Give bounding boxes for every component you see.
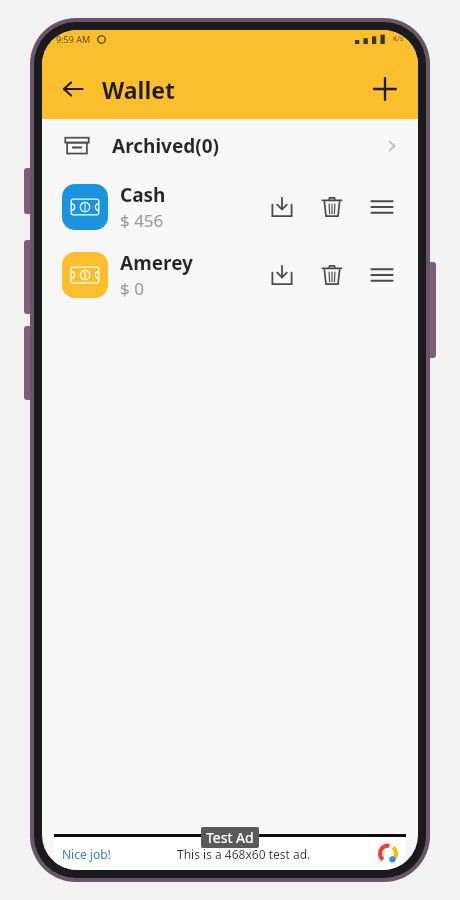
staticText: Archived(0) (112, 133, 220, 159)
button[interactable]: Reorder (362, 255, 402, 295)
button[interactable]: Back (50, 66, 96, 112)
staticText: 9:59 AM (56, 33, 91, 45)
staticText: Nice job! (62, 846, 111, 862)
staticText: This is a 468x60 test ad. (177, 846, 311, 862)
button[interactable]: Delete (312, 187, 352, 227)
button[interactable]: Archived(0) (42, 119, 418, 173)
staticText: K/s (393, 34, 404, 44)
button[interactable]: Archive (262, 255, 302, 295)
staticText: $ 456 (120, 209, 164, 232)
staticText: Cash (120, 182, 166, 208)
button[interactable]: Delete (312, 255, 352, 295)
staticText: $ 0 (120, 277, 144, 300)
staticText: Test Ad (206, 828, 254, 847)
staticText: Amerey (120, 250, 193, 276)
staticText: Wallet (102, 74, 175, 105)
button[interactable]: Amerey (42, 241, 418, 309)
button[interactable]: Cash (42, 173, 418, 241)
button[interactable]: Add wallet (362, 66, 408, 112)
button[interactable]: Nice job! (54, 837, 406, 870)
button[interactable]: Archive (262, 187, 302, 227)
button[interactable]: Reorder (362, 187, 402, 227)
